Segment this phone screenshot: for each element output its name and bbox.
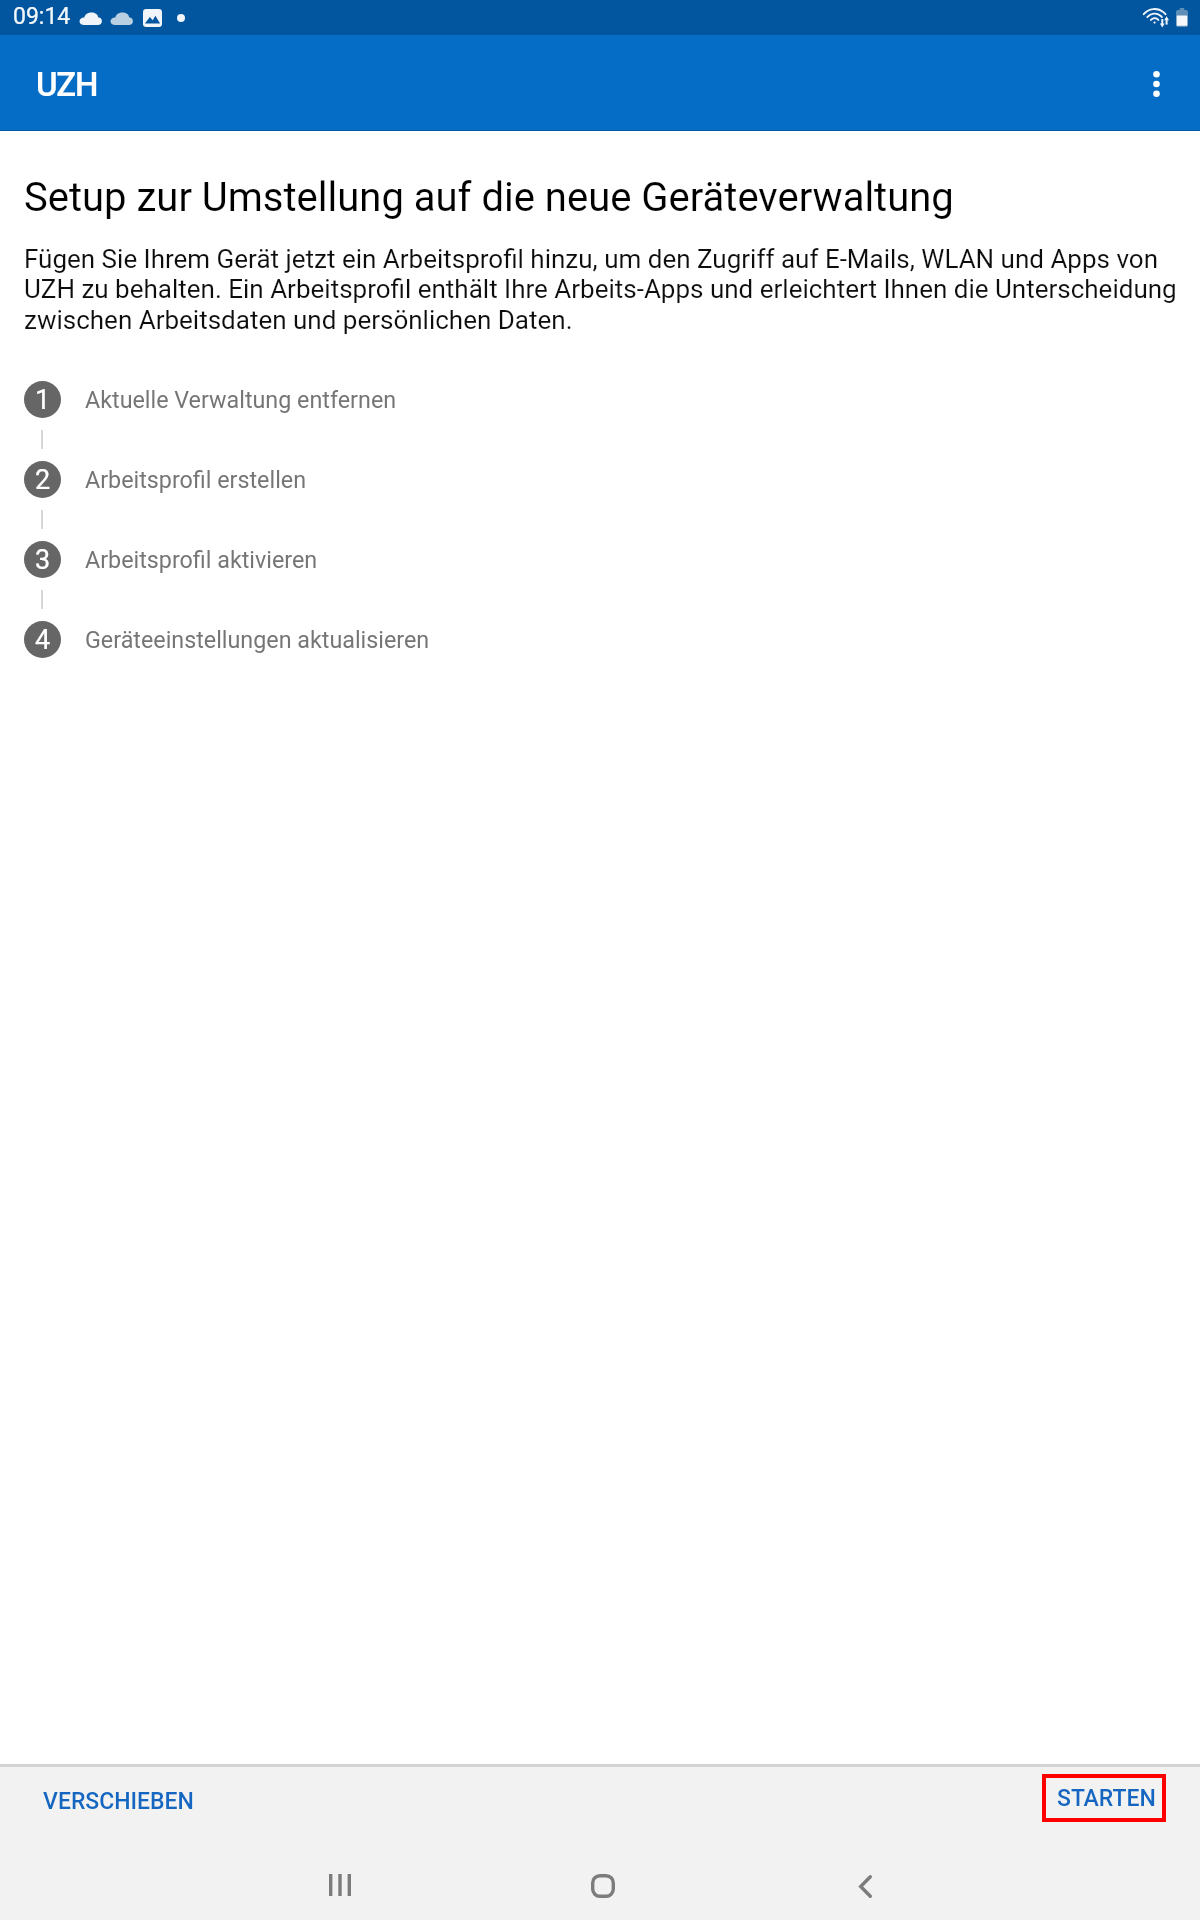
button[interactable]: VERSCHIEBEN bbox=[20, 1775, 217, 1828]
staticText: Setup zur Umstellung auf die neue Geräte… bbox=[24, 174, 1180, 221]
staticText: UZH bbox=[36, 65, 98, 104]
button[interactable]: Recents bbox=[289, 1847, 390, 1920]
button[interactable]: Home bbox=[552, 1848, 653, 1920]
staticText: Arbeitsprofil aktivieren bbox=[85, 546, 318, 573]
staticText: 09:14 bbox=[13, 3, 71, 30]
staticText: 3 bbox=[35, 544, 51, 576]
staticText: 2 bbox=[35, 464, 51, 496]
staticText: Fügen Sie Ihrem Gerät jetzt ein Arbeitsp… bbox=[24, 244, 1180, 336]
staticText: Aktuelle Verwaltung entfernen bbox=[85, 386, 397, 413]
staticText: Geräteeinstellungen aktualisieren bbox=[85, 626, 430, 653]
staticText: 1 bbox=[35, 384, 51, 416]
button[interactable]: Back bbox=[815, 1848, 916, 1920]
staticText: STARTEN bbox=[1057, 1785, 1156, 1812]
button[interactable]: More options bbox=[1104, 35, 1200, 131]
staticText: Arbeitsprofil erstellen bbox=[85, 466, 307, 493]
staticText: VERSCHIEBEN bbox=[43, 1788, 194, 1815]
button[interactable]: STARTEN bbox=[1042, 1774, 1166, 1822]
staticText: 4 bbox=[35, 624, 51, 656]
